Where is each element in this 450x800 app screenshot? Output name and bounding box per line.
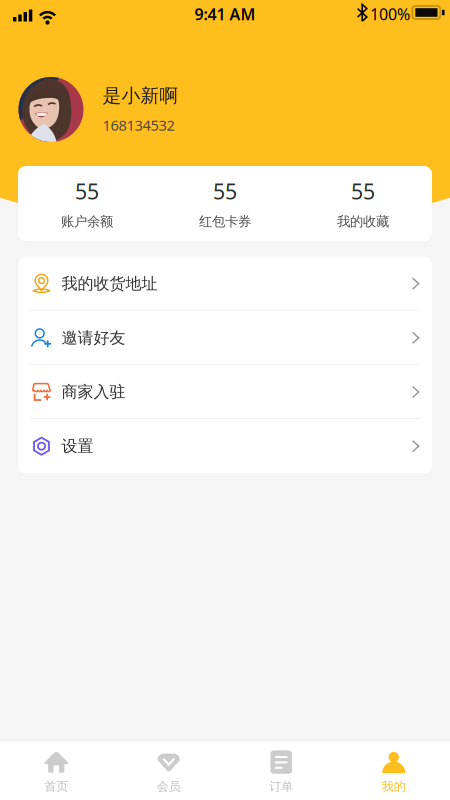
staticText: 我的收藏 [337,213,389,230]
button[interactable]: 设置 [18,419,432,473]
staticText: 设置 [61,436,93,456]
button[interactable]: 商家入驻 [18,365,432,419]
staticText: 100% [370,3,410,25]
staticText: 168134532 [102,115,174,135]
button[interactable]: 55 [156,166,294,241]
staticText: 55 [351,177,375,205]
staticText: 我的 [382,779,406,794]
staticText: 红包卡券 [199,213,251,230]
staticText: 邀请好友 [61,328,125,348]
staticText: 55 [75,177,99,205]
button[interactable]: 订单 [225,741,337,800]
staticText: 会员 [157,779,181,794]
staticText: 账户余额 [61,213,113,230]
button[interactable]: 55 [294,166,432,241]
button[interactable]: 我的 [337,741,450,800]
staticText: 订单 [269,779,293,794]
staticText: 我的收货地址 [61,274,157,293]
staticText: 商家入驻 [61,382,125,402]
button[interactable]: 会员 [112,741,225,800]
button[interactable]: 邀请好友 [18,311,432,365]
staticText: 55 [213,177,237,205]
staticText: 是小新啊 [102,84,178,107]
staticText: 9:41 AM [194,3,255,25]
button[interactable]: 首页 [0,741,112,800]
button[interactable]: 我的收货地址 [18,256,432,311]
button[interactable]: 55 [18,166,156,241]
staticText: 首页 [44,779,68,794]
